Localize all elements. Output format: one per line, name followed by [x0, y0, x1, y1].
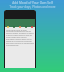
button[interactable]: Mood — [13, 26, 15, 28]
button[interactable]: Mood — [7, 26, 9, 28]
button[interactable]: Mood — [19, 26, 21, 28]
staticText: Track your days, Photos and more — [9, 5, 56, 9]
staticText: Add Mood of Your Own Self — [12, 1, 53, 5]
button[interactable]: Mood — [25, 26, 27, 28]
button[interactable]: Mood — [31, 26, 33, 28]
staticText: Lorem ipsum dolor sit amet consectetur a… — [6, 29, 34, 47]
button[interactable]: App bar — [5, 10, 35, 19]
